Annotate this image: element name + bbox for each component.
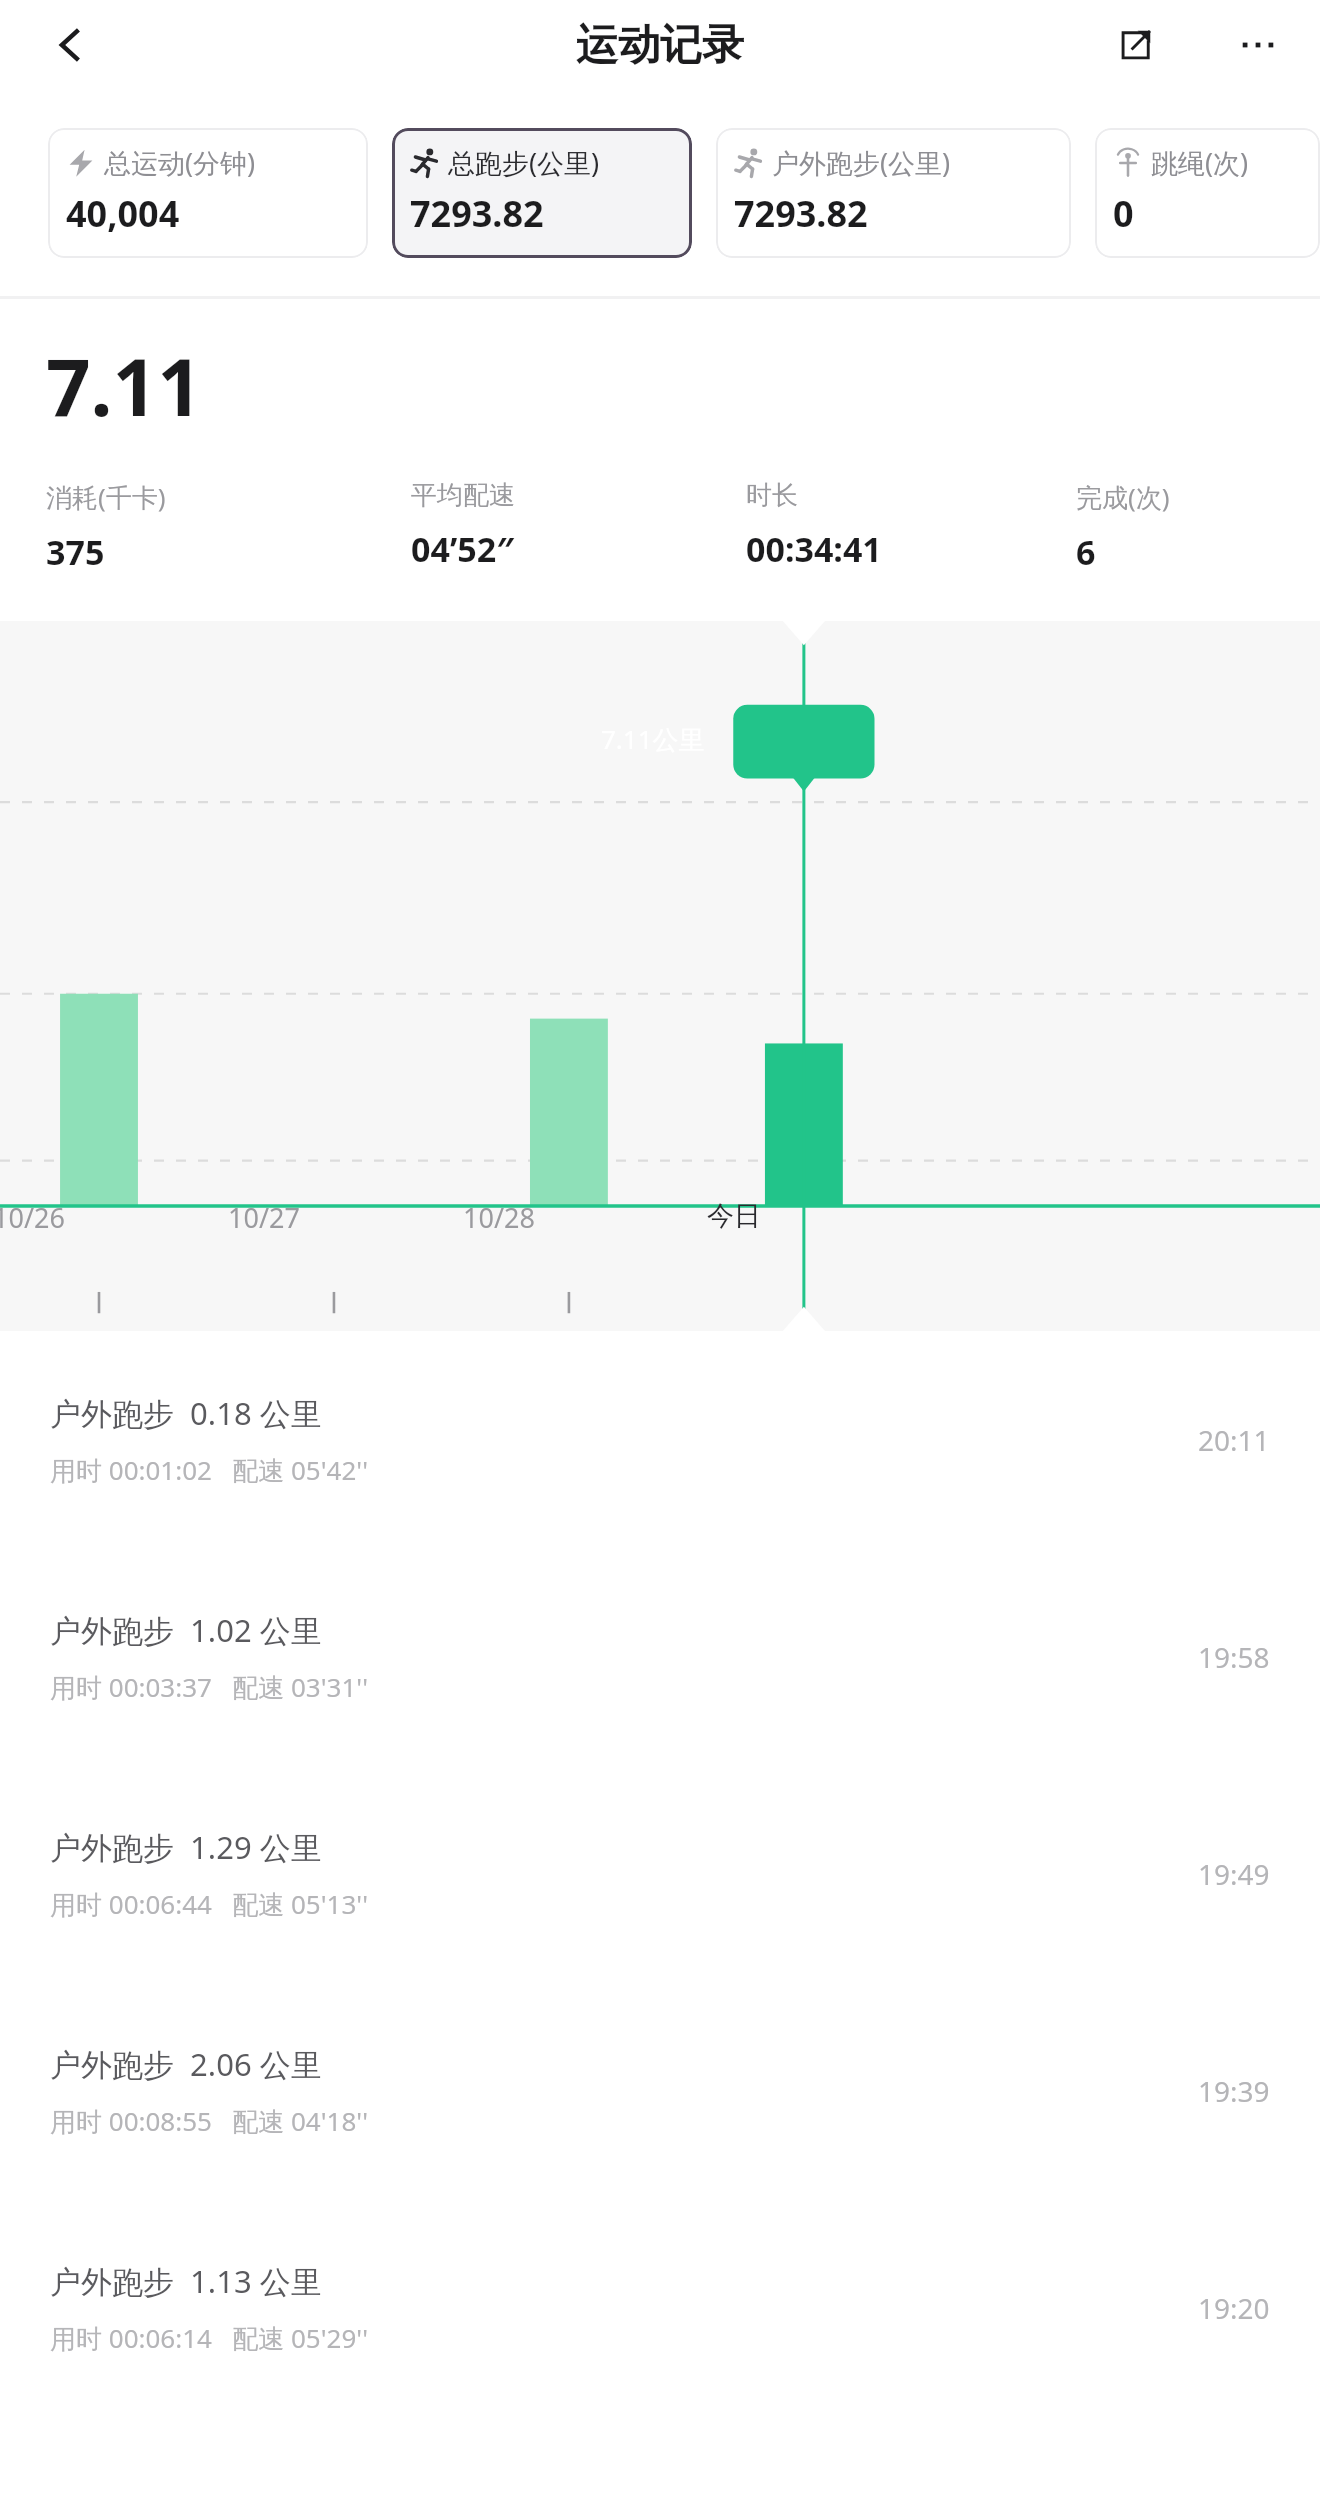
button[interactable]: 总运动(分钟) <box>48 128 368 258</box>
staticText: 户外跑步(公里) <box>772 144 951 181</box>
staticText: 跳绳(次) <box>1151 144 1249 181</box>
button[interactable]: 户外跑步(公里) <box>716 128 1071 258</box>
staticText: 375 <box>46 529 105 575</box>
button[interactable]: 户外跑步 1.13 公里 <box>0 2199 1320 2416</box>
staticText: 20:11 <box>1198 1421 1270 1459</box>
button[interactable]: More options <box>1226 13 1290 77</box>
button[interactable]: 户外跑步 2.06 公里 <box>0 1982 1320 2199</box>
staticText: 10/27 <box>228 1199 300 1236</box>
staticText: 户外跑步 1.13 公里 <box>50 2260 322 2302</box>
staticText: 6 <box>1076 529 1096 575</box>
staticText: 40,004 <box>66 189 180 238</box>
staticText: 7293.82 <box>410 189 544 238</box>
staticText: 总跑步(公里) <box>448 144 600 181</box>
button[interactable]: Back <box>38 13 102 77</box>
staticText: 7.11 <box>46 333 202 439</box>
button[interactable]: 户外跑步 0.18 公里 <box>0 1331 1320 1548</box>
staticText: 户外跑步 1.29 公里 <box>50 1826 322 1868</box>
staticText: 总运动(分钟) <box>104 144 256 181</box>
staticText: 用时 00:03:37 配速 03'31'' <box>50 1669 369 1705</box>
staticText: 0 <box>1113 189 1134 238</box>
button[interactable]: Share <box>1104 13 1168 77</box>
button[interactable]: 跳绳(次) <box>1095 128 1320 258</box>
staticText: 平均配速 <box>411 479 515 512</box>
staticText: 00:34:41 <box>746 526 882 572</box>
button[interactable]: 总跑步(公里) <box>392 128 692 258</box>
staticText: 用时 00:01:02 配速 05'42'' <box>50 1452 369 1488</box>
staticText: 户外跑步 0.18 公里 <box>50 1392 322 1434</box>
staticText: 户外跑步 2.06 公里 <box>50 2043 322 2085</box>
staticText: 运动记录 <box>576 19 744 72</box>
staticText: 19:49 <box>1198 1855 1270 1893</box>
button[interactable]: 户外跑步 1.29 公里 <box>0 1765 1320 1982</box>
staticText: 04’52″ <box>411 526 514 572</box>
staticText: 19:39 <box>1198 2072 1270 2110</box>
staticText: 19:20 <box>1198 2289 1270 2327</box>
staticText: 完成(次) <box>1076 479 1170 515</box>
staticText: 户外跑步 1.02 公里 <box>50 1609 322 1651</box>
button[interactable]: 户外跑步 1.02 公里 <box>0 1548 1320 1765</box>
staticText: 7293.82 <box>734 189 868 238</box>
staticText: 用时 00:08:55 配速 04'18'' <box>50 2103 369 2139</box>
staticText: 用时 00:06:44 配速 05'13'' <box>50 1886 369 1922</box>
staticText: 消耗(千卡) <box>46 479 166 515</box>
staticText: 今日 <box>707 1199 761 1233</box>
staticText: 10/28 <box>463 1199 535 1236</box>
staticText: 10/26 <box>0 1199 65 1236</box>
staticText: 19:58 <box>1198 1638 1270 1676</box>
staticText: 时长 <box>746 479 798 512</box>
staticText: 用时 00:06:14 配速 05'29'' <box>50 2320 369 2356</box>
